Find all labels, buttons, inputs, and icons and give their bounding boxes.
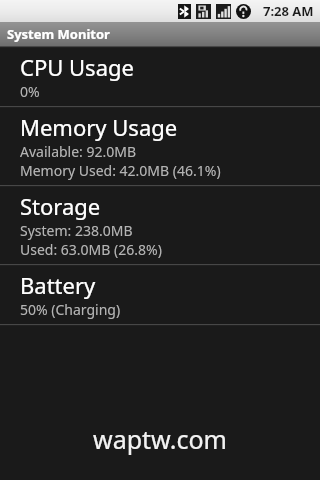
staticText: 50% (Charging) bbox=[20, 300, 121, 319]
staticText: Battery bbox=[20, 270, 96, 300]
staticText: waptw.com bbox=[93, 422, 227, 456]
staticText: Storage bbox=[20, 191, 101, 221]
other: Bluetooth bbox=[178, 4, 191, 19]
button[interactable]: CPU Usage bbox=[0, 48, 320, 106]
staticText: Memory Used: 42.0MB (46.1%) bbox=[20, 161, 221, 180]
staticText: 0% bbox=[20, 82, 40, 101]
button[interactable]: Storage bbox=[0, 187, 320, 264]
other: Signal strength bbox=[216, 4, 231, 19]
button[interactable]: Memory Usage bbox=[0, 108, 320, 185]
staticText: Memory Usage bbox=[20, 112, 178, 142]
staticText: System: 238.0MB bbox=[20, 221, 133, 240]
staticText: Available: 92.0MB bbox=[20, 142, 137, 161]
staticText: Used: 63.0MB (26.8%) bbox=[20, 240, 162, 259]
other: Sync bbox=[196, 4, 211, 19]
staticText: 7:28 AM bbox=[263, 2, 314, 20]
staticText: System Monitor bbox=[7, 25, 110, 43]
other: Unknown status bbox=[236, 4, 251, 19]
staticText: CPU Usage bbox=[20, 52, 134, 82]
button[interactable]: Battery bbox=[0, 266, 320, 324]
